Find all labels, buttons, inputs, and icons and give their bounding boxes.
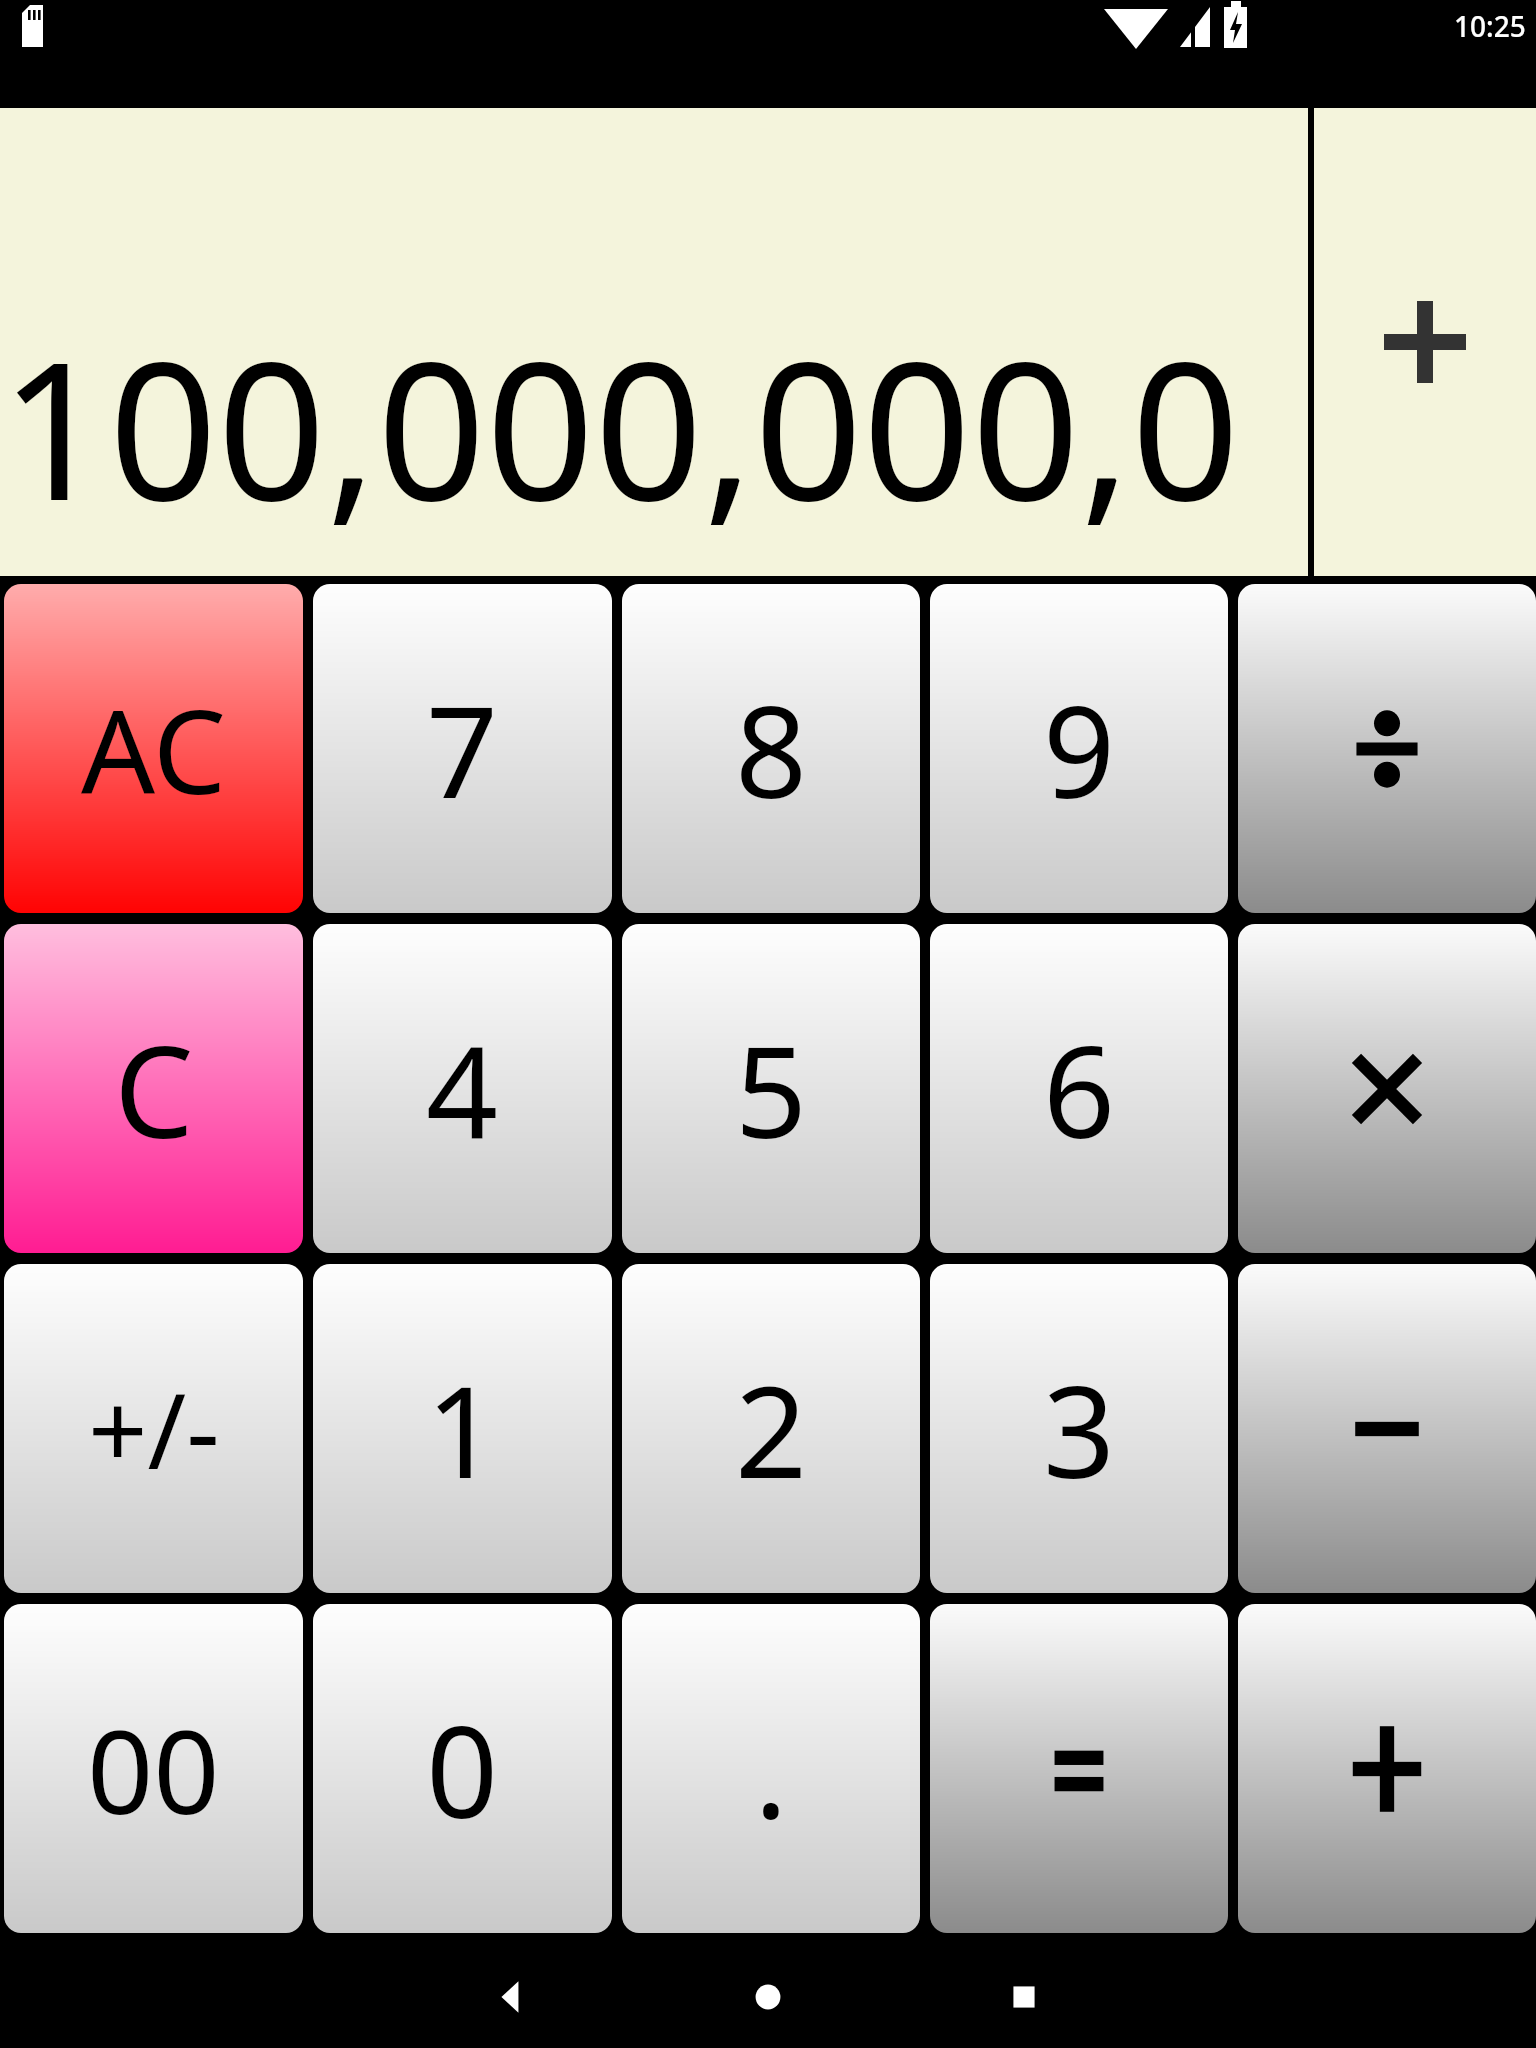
button[interactable]: 7 xyxy=(313,584,612,913)
button[interactable]: Subtract xyxy=(1238,1264,1536,1593)
button[interactable]: 0 xyxy=(313,1604,612,1933)
staticText: 10:25 xyxy=(1454,7,1526,45)
staticText: 6 xyxy=(1043,1003,1116,1175)
staticText: 00 xyxy=(87,1690,220,1848)
staticText: 100,000,000,000 xyxy=(0,297,1300,556)
staticText: 5 xyxy=(735,1003,808,1175)
button[interactable]: AC xyxy=(4,584,303,913)
button[interactable]: 4 xyxy=(313,924,612,1253)
button[interactable]: Home xyxy=(724,1953,812,2041)
staticText: . xyxy=(754,1683,788,1855)
button[interactable]: Multiply xyxy=(1238,924,1536,1253)
button[interactable]: Back xyxy=(468,1953,556,2041)
button[interactable]: 8 xyxy=(622,584,920,913)
button[interactable]: 2 xyxy=(622,1264,920,1593)
staticText: 9 xyxy=(1043,663,1116,835)
button[interactable]: 1 xyxy=(313,1264,612,1593)
button[interactable]: Divide xyxy=(1238,584,1536,913)
button[interactable]: 9 xyxy=(930,584,1228,913)
staticText: 7 xyxy=(426,663,499,835)
staticText: 4 xyxy=(426,1003,499,1175)
button[interactable]: Recent apps xyxy=(980,1953,1068,2041)
button[interactable]: C xyxy=(4,924,303,1253)
button[interactable]: Pending operator add xyxy=(1314,108,1536,576)
staticText: 1 xyxy=(426,1343,499,1515)
staticText: 3 xyxy=(1043,1343,1116,1515)
button[interactable]: Equals xyxy=(930,1604,1228,1933)
staticText: 0 xyxy=(426,1683,499,1855)
button[interactable]: . xyxy=(622,1604,920,1933)
button[interactable]: Add xyxy=(1238,1604,1536,1933)
button[interactable]: 3 xyxy=(930,1264,1228,1593)
staticText: C xyxy=(114,1003,194,1175)
button[interactable]: +/- xyxy=(4,1264,303,1593)
staticText: 2 xyxy=(735,1343,808,1515)
staticText: +/- xyxy=(88,1358,220,1500)
staticText: 8 xyxy=(735,663,808,835)
button[interactable]: 00 xyxy=(4,1604,303,1933)
button[interactable]: 5 xyxy=(622,924,920,1253)
button[interactable]: 6 xyxy=(930,924,1228,1253)
button[interactable]: 100,000,000,000 xyxy=(0,108,1308,576)
staticText: AC xyxy=(81,670,227,828)
